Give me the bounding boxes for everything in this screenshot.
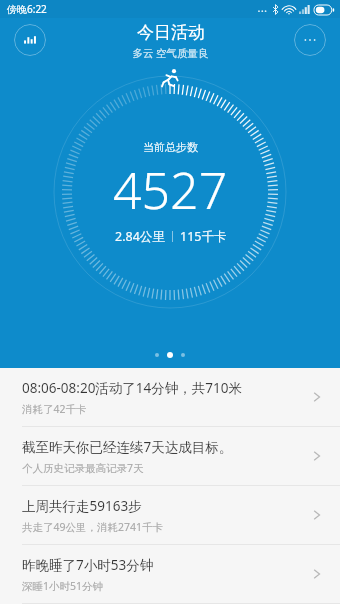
staticText: 多云 空气质量良 [132,46,209,60]
button[interactable]: Statistics [14,24,46,56]
staticText: 2.84公里 [115,228,165,245]
staticText: 当前总步数 [143,140,198,154]
staticText: 115千卡 [180,228,227,245]
button[interactable]: 08:06-08:20活动了14分钟，共710米 [0,368,340,426]
staticText: 上周共行走59163步 [22,497,142,515]
staticText: 傍晚6:22 [7,2,47,16]
staticText: 08:06-08:20活动了14分钟，共710米 [22,379,242,397]
staticText: 昨晚睡了7小时53分钟 [22,556,154,574]
button[interactable]: 上周共行走59163步 [0,486,340,544]
button[interactable]: 昨晚睡了7小时53分钟 [0,545,340,603]
staticText: 4527 [113,156,228,224]
staticText: 个人历史记录最高记录7天 [22,461,144,475]
button[interactable]: More options [294,24,326,56]
staticText: 截至昨天你已经连续7天达成目标。 [22,438,233,456]
staticText: 共走了49公里，消耗2741千卡 [22,520,164,534]
staticText: 消耗了42千卡 [22,402,87,416]
staticText: 今日活动 [137,22,205,43]
staticText: 深睡1小时51分钟 [22,579,104,593]
button[interactable]: 截至昨天你已经连续7天达成目标。 [0,427,340,485]
